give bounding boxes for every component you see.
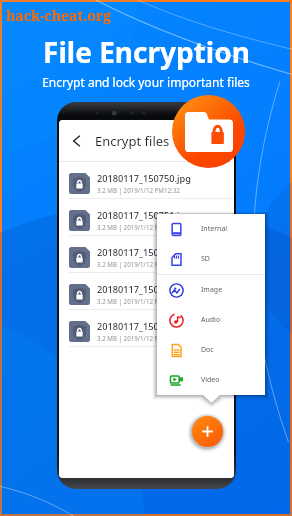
button[interactable]: Image — [157, 275, 265, 305]
button[interactable]: Doc — [157, 335, 265, 365]
button[interactable]: 20180117_150750.jpg — [59, 162, 234, 198]
staticText: Internal — [201, 224, 228, 234]
staticText: Encrypt files — [95, 132, 170, 150]
staticText: Encrypt and lock your important files — [42, 74, 250, 90]
staticText: Video — [201, 375, 220, 385]
staticText: 20180117_150753.jpg — [97, 283, 191, 296]
staticText: Image — [201, 285, 223, 295]
button[interactable]: Back — [59, 120, 234, 161]
staticText: 3.2 MB | 2019/1/12 PM12:32 — [97, 186, 180, 194]
staticText: 20180117_150754.jpg — [97, 320, 191, 333]
staticText: Audio — [201, 315, 221, 325]
button[interactable]: Add — [192, 416, 223, 447]
staticText: 3.2 MB | 2019/1/12 PM12:32 — [97, 297, 180, 305]
staticText: Doc — [201, 345, 214, 355]
staticText: SD — [201, 254, 210, 264]
staticText: 20180117_150750.jpg — [97, 172, 191, 185]
staticText: hack-cheat.org — [6, 6, 112, 25]
staticText: 20180117_150752.jpg — [97, 246, 191, 259]
staticText: 3.2 MB | 2019/1/12 PM12:32 — [97, 223, 180, 231]
button[interactable]: Back — [67, 131, 87, 151]
button[interactable]: SD — [157, 244, 265, 274]
staticText: 3.2 MB | 2019/1/12 PM12:32 — [97, 334, 180, 342]
button[interactable]: Video — [157, 365, 265, 395]
staticText: File Encryption — [43, 33, 250, 71]
staticText: 3.2 MB | 2019/1/12 PM12:32 — [97, 260, 180, 268]
button[interactable]: Internal — [157, 214, 265, 244]
button[interactable]: Encrypted folder — [172, 95, 245, 168]
button[interactable]: 20180117_150751.jpg — [59, 199, 234, 235]
button[interactable]: 20180117_150754.jpg — [59, 310, 234, 346]
button[interactable]: Audio — [157, 305, 265, 335]
staticText: 20180117_150751.jpg — [97, 209, 191, 222]
button[interactable]: 20180117_150753.jpg — [59, 273, 234, 309]
button[interactable]: 20180117_150752.jpg — [59, 236, 234, 272]
